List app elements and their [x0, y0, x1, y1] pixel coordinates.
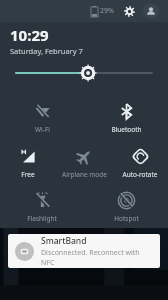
staticText: Saturday, February 7 — [10, 46, 83, 56]
staticText: 29% — [100, 6, 114, 16]
staticText: SmartBand — [41, 235, 87, 247]
staticText: 10:29 — [10, 25, 49, 45]
staticText: Wi-Fi — [35, 125, 50, 134]
staticText: Airplane mode — [62, 170, 107, 179]
staticText: Bluetooth — [111, 125, 142, 134]
button[interactable]: Auto-rotate — [112, 140, 168, 186]
button[interactable]: User — [143, 3, 159, 19]
staticText: Disconnected. Reconnect with NFC — [41, 248, 153, 268]
button[interactable]: Airplane mode — [56, 140, 112, 186]
staticText: Flashlight — [27, 214, 57, 223]
staticText: Auto-rotate — [122, 170, 158, 179]
button[interactable]: Brightness — [0, 60, 168, 86]
button[interactable]: Wi-Fi — [0, 96, 84, 140]
staticText: Hotspot — [114, 214, 139, 223]
button[interactable]: Hotspot — [84, 186, 168, 228]
button[interactable]: Bluetooth — [84, 96, 168, 140]
button[interactable]: Free — [0, 140, 56, 186]
button[interactable]: SmartBand — [8, 234, 160, 268]
button[interactable]: Settings — [121, 3, 137, 19]
staticText: Free — [21, 170, 35, 179]
button[interactable]: Flashlight — [0, 186, 84, 228]
